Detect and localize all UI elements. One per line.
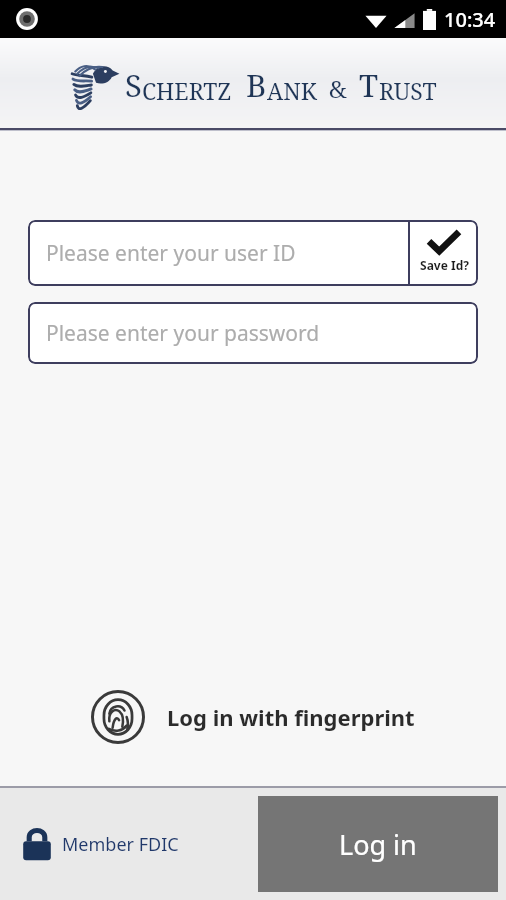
staticText: ANK xyxy=(267,75,317,106)
staticText: Please enter your password xyxy=(46,319,320,348)
other: Schertz Bank logo xyxy=(69,57,121,113)
staticText: S xyxy=(125,64,142,106)
button[interactable]: Save Id xyxy=(410,220,478,286)
staticText: Log in with fingerprint xyxy=(167,702,415,732)
button[interactable]: Please enter your password xyxy=(28,302,478,364)
button[interactable]: Please enter your user ID xyxy=(28,220,408,286)
button[interactable]: Log in xyxy=(258,796,498,892)
staticText: Member FDIC xyxy=(62,832,179,857)
staticText: CHERTZ xyxy=(142,75,232,106)
staticText: Log in xyxy=(339,826,417,863)
staticText: 10:34 xyxy=(444,6,496,33)
button[interactable]: Log in with fingerprint xyxy=(0,690,506,744)
staticText: B xyxy=(246,64,267,106)
staticText: & xyxy=(329,72,347,105)
staticText: Save Id? xyxy=(420,257,469,273)
staticText: Please enter your user ID xyxy=(46,239,296,268)
staticText: RUST xyxy=(379,75,437,106)
button[interactable]: Member FDIC xyxy=(22,827,179,861)
staticText: T xyxy=(359,64,379,106)
